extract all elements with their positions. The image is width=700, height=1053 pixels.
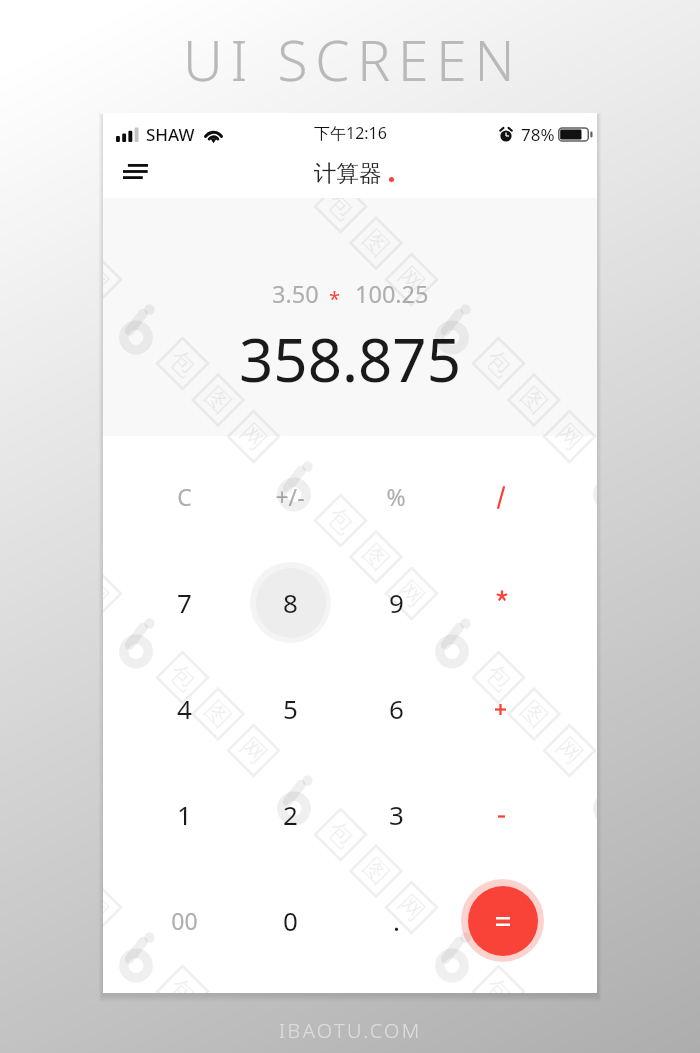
button[interactable]: +/- [237, 443, 343, 549]
button[interactable]: 3 [343, 761, 449, 867]
button[interactable]: 8 [237, 549, 343, 655]
button[interactable]: 5 [237, 655, 343, 761]
staticText: IBAOTU.COM [279, 1017, 422, 1044]
button[interactable] [449, 549, 555, 655]
staticText: +/- [275, 481, 305, 512]
staticText: 00 [171, 905, 198, 936]
staticText: 2 [283, 797, 298, 832]
staticText: C [177, 481, 192, 512]
staticText: 4 [177, 691, 192, 726]
button[interactable]: 4 [132, 655, 237, 761]
staticText: * [329, 285, 341, 312]
staticText: 78% [521, 123, 555, 146]
button[interactable]: 2 [237, 761, 343, 867]
button[interactable] [449, 443, 555, 549]
button[interactable]: 7 [132, 549, 237, 655]
button[interactable]: 1 [132, 761, 237, 867]
staticText: 7 [177, 585, 192, 620]
button[interactable]: C [132, 443, 237, 549]
button[interactable] [449, 761, 555, 867]
staticText: 计算器 [314, 159, 382, 187]
staticText: 100.25 [355, 278, 429, 310]
button[interactable]: . [343, 867, 449, 973]
staticText: . [393, 903, 400, 938]
staticText: 5 [283, 691, 298, 726]
button[interactable]: 6 [343, 655, 449, 761]
button[interactable]: 0 [237, 867, 343, 973]
staticText: 1 [177, 797, 192, 832]
button[interactable]: Menu [116, 152, 154, 190]
staticText: UI SCREEN [183, 22, 523, 97]
staticText: 0 [283, 903, 298, 938]
button[interactable]: 9 [343, 549, 449, 655]
staticText: 358.875 [239, 318, 461, 400]
staticText: 3 [389, 797, 404, 832]
staticText: 8 [283, 585, 298, 620]
staticText: 3.50 [272, 278, 319, 310]
staticText: 9 [389, 585, 404, 620]
button[interactable]: 00 [132, 867, 237, 973]
staticText: 下午12:16 [314, 122, 387, 144]
staticText: 6 [389, 691, 404, 726]
other: Equals [468, 886, 538, 956]
staticText: % [386, 481, 406, 512]
staticText: SHAW [146, 123, 195, 146]
button[interactable]: % [343, 443, 449, 549]
button[interactable] [449, 655, 555, 761]
button[interactable]: Equals [449, 867, 555, 973]
